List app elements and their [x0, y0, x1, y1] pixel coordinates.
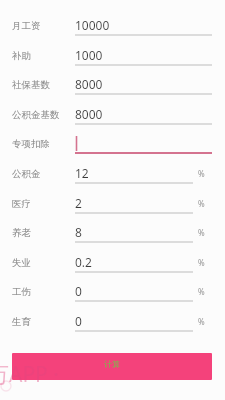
staticText: 专项扣除	[12, 138, 50, 150]
button[interactable]: 生育	[0, 309, 225, 336]
staticText: 8000	[75, 76, 103, 92]
staticText: 生育	[12, 316, 31, 328]
staticText: 月工资	[12, 20, 41, 32]
staticText: 8000	[75, 106, 103, 122]
button[interactable]: 工伤	[0, 279, 225, 306]
staticText: 养老	[12, 227, 31, 239]
button[interactable]: 计算	[12, 353, 212, 380]
staticText: 补助	[12, 50, 31, 62]
staticText: %	[198, 198, 205, 209]
staticText: %	[198, 286, 205, 297]
button[interactable]: 失业	[0, 250, 225, 277]
staticText: 计算	[104, 359, 120, 369]
staticText: 8	[75, 224, 82, 240]
staticText: 0	[75, 283, 82, 299]
staticText: 社保基数	[12, 79, 50, 91]
button[interactable]: 专项扣除	[0, 131, 225, 158]
button[interactable]: 补助	[0, 43, 225, 70]
staticText: 2	[75, 195, 82, 211]
button[interactable]: 月工资	[0, 13, 225, 40]
staticText: 12	[75, 165, 89, 181]
staticText: 失业	[12, 257, 31, 269]
staticText: 1000	[75, 47, 103, 63]
staticText: 公积金	[12, 168, 41, 180]
staticText: %	[198, 257, 205, 268]
staticText: %	[198, 316, 205, 327]
staticText: 工伤	[12, 286, 31, 298]
staticText: 0	[75, 313, 82, 329]
button[interactable]: 社保基数	[0, 72, 225, 99]
staticText: 0.2	[75, 254, 92, 270]
button[interactable]: 养老	[0, 220, 225, 247]
staticText: 万APP · 4008891800.CO	[0, 360, 213, 390]
staticText: 公积金基数	[12, 109, 60, 121]
staticText: 医疗	[12, 198, 31, 210]
staticText: 10000	[75, 17, 110, 33]
staticText: %	[198, 227, 205, 238]
button[interactable]: 医疗	[0, 191, 225, 218]
staticText: %	[198, 168, 205, 179]
button[interactable]: 公积金	[0, 161, 225, 188]
button[interactable]: 公积金基数	[0, 102, 225, 129]
